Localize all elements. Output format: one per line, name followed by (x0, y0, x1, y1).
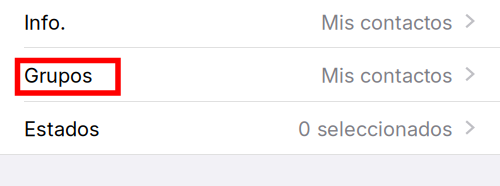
staticText: Info. (24, 10, 66, 35)
staticText: Estados (24, 117, 99, 141)
staticText: Mis contactos (321, 63, 452, 88)
button[interactable]: Info. (0, 0, 500, 47)
staticText: Grupos (24, 63, 92, 88)
staticText: Mis contactos (321, 10, 452, 35)
staticText: 0 seleccionados (298, 117, 452, 141)
button[interactable]: Estados (0, 102, 500, 154)
button[interactable]: Grupos (0, 48, 500, 101)
